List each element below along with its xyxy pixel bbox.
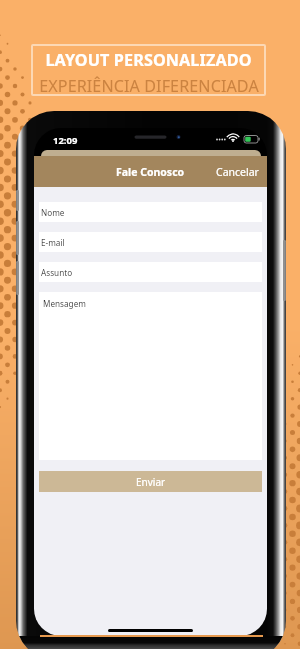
button[interactable]: E-mail: [39, 232, 262, 252]
button[interactable]: Enviar: [39, 471, 262, 492]
staticText: 12:09: [53, 134, 78, 147]
button[interactable]: Mensagem: [39, 292, 262, 460]
staticText: Cancelar: [216, 165, 259, 179]
button[interactable]: Assunto: [39, 262, 262, 282]
staticText: LAYOUT PERSONALIZADO: [45, 49, 252, 71]
staticText: E-mail: [41, 237, 65, 248]
staticText: Fale Conosco: [116, 165, 185, 179]
other: Home: [108, 629, 193, 632]
staticText: Nome: [41, 207, 65, 218]
staticText: Enviar: [136, 475, 166, 489]
staticText: Assunto: [41, 267, 73, 278]
staticText: EXPERIÊNCIA DIFERENCIADA: [39, 75, 259, 97]
staticText: Mensagem: [43, 298, 86, 309]
button[interactable]: Cancelar: [208, 158, 267, 186]
button[interactable]: Nome: [39, 202, 262, 222]
button[interactable]: Fale Conosco: [34, 156, 267, 187]
